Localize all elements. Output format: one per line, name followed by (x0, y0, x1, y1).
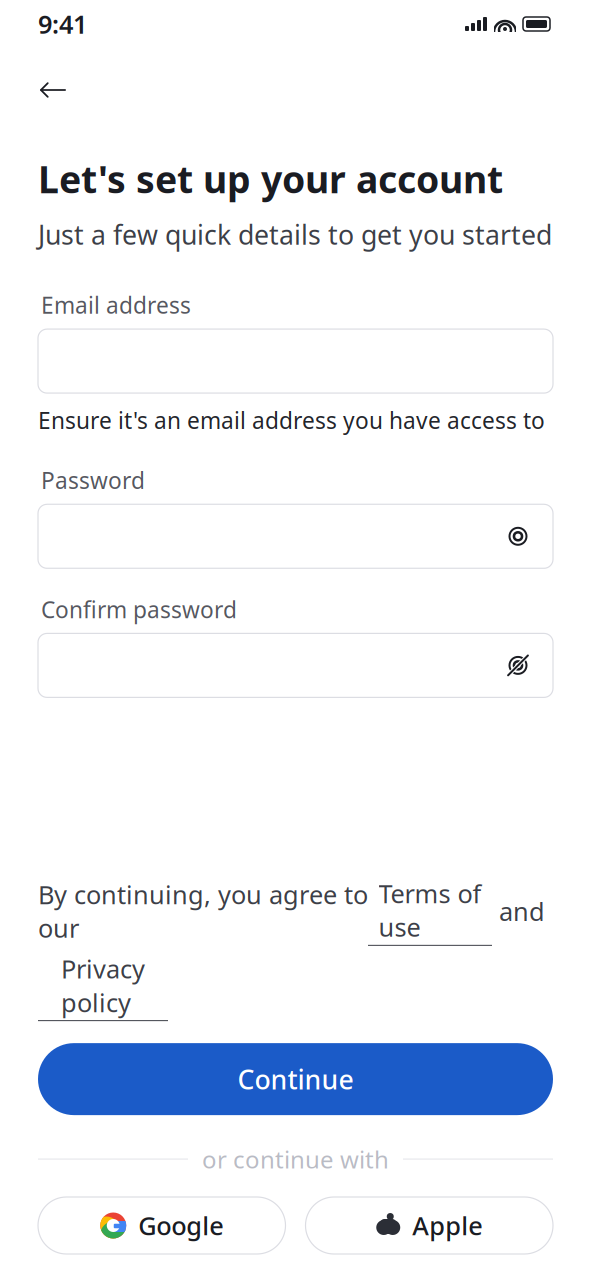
button[interactable]: Back (31, 68, 75, 112)
staticText: Confirm password (41, 594, 237, 624)
staticText: Ensure it's an email address you have ac… (38, 405, 545, 435)
button[interactable] (38, 633, 553, 697)
button[interactable]: Continue (38, 1043, 553, 1115)
button[interactable]: Google (38, 1197, 285, 1254)
button[interactable] (38, 504, 553, 568)
button[interactable] (38, 329, 553, 393)
staticText: and (492, 894, 545, 928)
staticText: Privacy policy (61, 952, 145, 1019)
staticText: Terms of use (378, 877, 481, 944)
staticText: Just a few quick details to get you star… (38, 217, 552, 252)
staticText: Apple (412, 1209, 483, 1242)
staticText: Let's set up your account (38, 154, 503, 204)
staticText: By continuing, you agree to our (38, 878, 368, 945)
staticText: Continue (237, 1061, 353, 1097)
staticText: Password (41, 465, 145, 495)
button[interactable]: Apple (305, 1197, 553, 1254)
staticText: Google (138, 1209, 224, 1242)
staticText: 9:41 (38, 7, 87, 41)
staticText: or continue with (202, 1143, 389, 1175)
button[interactable]: Terms of use (368, 877, 492, 946)
button[interactable]: Privacy policy (38, 952, 168, 1021)
staticText: Email address (41, 290, 191, 320)
